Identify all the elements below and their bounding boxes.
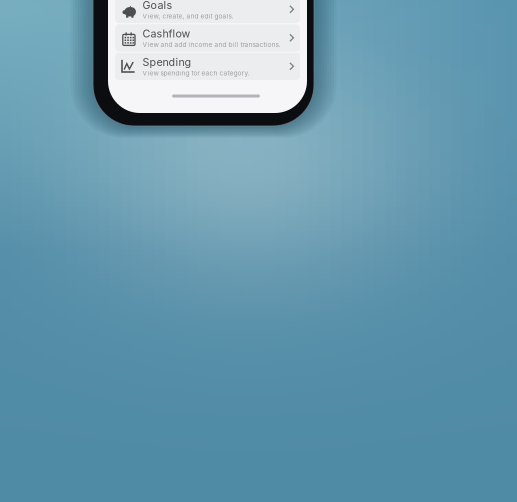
staticText: Goals <box>142 0 172 12</box>
staticText: View, create, and edit goals. <box>142 12 233 20</box>
staticText: View spending for each category. <box>142 69 249 77</box>
staticText: View and add income and bill transaction… <box>142 41 280 49</box>
button[interactable]: Spending <box>115 53 300 80</box>
button[interactable]: Goals <box>115 0 300 23</box>
button[interactable]: Cashflow <box>115 24 300 51</box>
staticText: Cashflow <box>142 27 190 40</box>
staticText: Spending <box>142 56 191 69</box>
